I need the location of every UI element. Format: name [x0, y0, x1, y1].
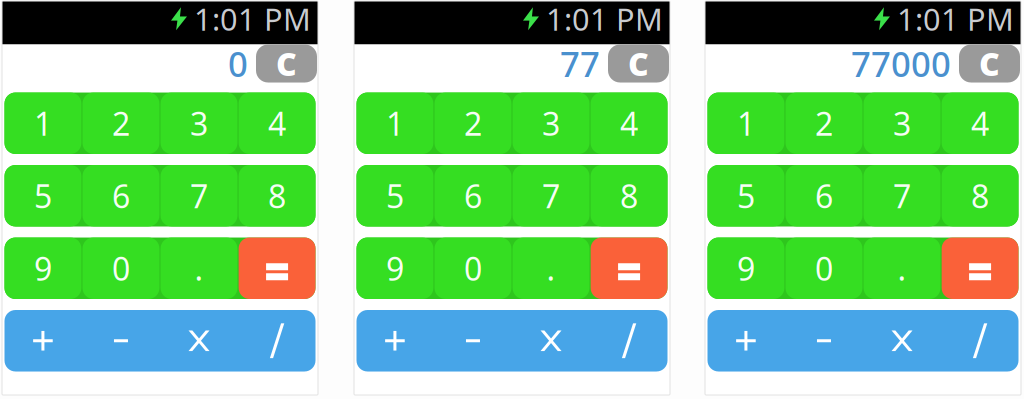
staticText: 6 — [112, 174, 130, 217]
staticText: 8 — [971, 174, 989, 217]
staticText: 0 — [464, 247, 482, 289]
button[interactable]: 0 — [785, 237, 862, 299]
staticText: 77 — [560, 40, 600, 86]
button[interactable]: 7 — [513, 165, 589, 226]
staticText: 0 — [228, 40, 248, 86]
button[interactable]: 9 — [356, 237, 433, 299]
staticText: 8 — [268, 174, 286, 217]
staticText: 9 — [386, 247, 404, 289]
staticText: 9 — [34, 247, 52, 289]
staticText: 4 — [620, 102, 638, 144]
button[interactable]: C — [608, 44, 669, 82]
staticText: 0 — [815, 247, 833, 289]
staticText: 2 — [464, 102, 482, 144]
staticText: 1 — [737, 102, 755, 144]
button[interactable]: 4 — [591, 92, 667, 154]
staticText: 7 — [893, 174, 911, 217]
button[interactable]: 6 — [785, 165, 862, 226]
button[interactable]: C — [959, 44, 1020, 82]
button[interactable]: Divide — [942, 310, 1018, 371]
button[interactable]: Divide — [239, 310, 315, 371]
staticText: . — [897, 247, 906, 289]
button[interactable]: 5 — [356, 165, 433, 226]
staticText: 1:01 PM — [897, 0, 1014, 39]
button[interactable]: 3 — [513, 92, 589, 154]
button[interactable]: 0 — [82, 237, 159, 299]
button[interactable]: 1 — [356, 92, 433, 154]
staticText: 6 — [464, 174, 482, 217]
button[interactable]: 3 — [864, 92, 940, 154]
button[interactable]: Subtract — [82, 310, 159, 371]
staticText: 3 — [893, 102, 911, 144]
staticText: 9 — [737, 247, 755, 289]
button[interactable]: . — [513, 237, 589, 299]
button[interactable]: Add — [356, 310, 433, 371]
staticText: C — [276, 42, 297, 85]
staticText: 1 — [34, 102, 52, 144]
button[interactable]: 9 — [4, 237, 81, 299]
button[interactable]: Equals — [591, 237, 667, 299]
staticText: 6 — [815, 174, 833, 217]
button[interactable]: 7 — [161, 165, 237, 226]
staticText: C — [979, 42, 1000, 85]
button[interactable]: 4 — [239, 92, 315, 154]
button[interactable]: 8 — [591, 165, 667, 226]
button[interactable]: . — [864, 237, 940, 299]
staticText: 3 — [190, 102, 208, 144]
button[interactable]: 4 — [942, 92, 1018, 154]
staticText: 7 — [190, 174, 208, 217]
staticText: . — [546, 247, 555, 289]
staticText: 5 — [386, 174, 404, 217]
button[interactable]: Add — [4, 310, 81, 371]
staticText: . — [194, 247, 203, 289]
staticText: 0 — [112, 247, 130, 289]
staticText: 1 — [386, 102, 404, 144]
button[interactable]: Multiply — [161, 310, 237, 371]
staticText: 5 — [34, 174, 52, 217]
button[interactable]: 2 — [785, 92, 862, 154]
button[interactable]: Multiply — [864, 310, 940, 371]
staticText: 77000 — [851, 40, 951, 86]
button[interactable]: 8 — [942, 165, 1018, 226]
button[interactable]: Subtract — [785, 310, 862, 371]
button[interactable]: 5 — [707, 165, 784, 226]
button[interactable]: 1 — [4, 92, 81, 154]
button[interactable]: Subtract — [435, 310, 511, 371]
staticText: 2 — [112, 102, 130, 144]
staticText: C — [628, 42, 649, 85]
staticText: 4 — [268, 102, 286, 144]
button[interactable]: 2 — [82, 92, 159, 154]
button[interactable]: 7 — [864, 165, 940, 226]
button[interactable]: Equals — [942, 237, 1018, 299]
button[interactable]: 8 — [239, 165, 315, 226]
button[interactable]: 9 — [707, 237, 784, 299]
staticText: 1:01 PM — [546, 0, 663, 39]
staticText: 5 — [737, 174, 755, 217]
button[interactable]: 6 — [435, 165, 511, 226]
button[interactable]: Equals — [239, 237, 315, 299]
button[interactable]: 0 — [435, 237, 511, 299]
button[interactable]: Multiply — [513, 310, 589, 371]
button[interactable]: 1 — [707, 92, 784, 154]
button[interactable]: C — [256, 44, 317, 82]
button[interactable]: Divide — [591, 310, 667, 371]
staticText: 8 — [620, 174, 638, 217]
staticText: 3 — [542, 102, 560, 144]
button[interactable]: 5 — [4, 165, 81, 226]
button[interactable]: 6 — [82, 165, 159, 226]
staticText: 2 — [815, 102, 833, 144]
button[interactable]: . — [161, 237, 237, 299]
button[interactable]: 2 — [435, 92, 511, 154]
button[interactable]: Add — [707, 310, 784, 371]
staticText: 7 — [542, 174, 560, 217]
staticText: 4 — [971, 102, 989, 144]
staticText: 1:01 PM — [194, 0, 311, 39]
button[interactable]: 3 — [161, 92, 237, 154]
